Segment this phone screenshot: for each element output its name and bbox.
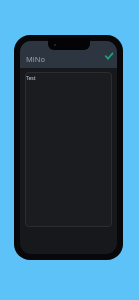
button[interactable]: Save note [104, 51, 114, 61]
staticText: Test [26, 75, 36, 82]
staticText: MiNo [26, 54, 45, 64]
button[interactable]: Test [25, 72, 112, 227]
